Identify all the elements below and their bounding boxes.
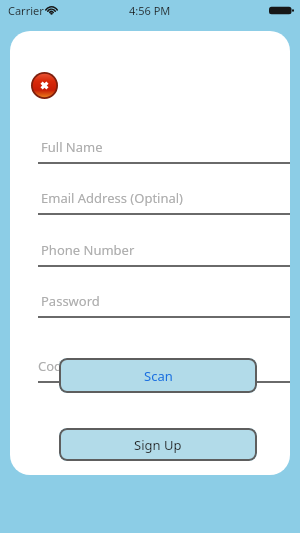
staticText: 4:56 PM [129,3,171,18]
button[interactable]: Full Name [10,138,290,164]
button[interactable]: Password [10,292,290,318]
staticText: Full Name [41,138,103,156]
button[interactable]: Scan [59,358,257,393]
button[interactable]: Email Address (Optinal) [10,189,290,215]
button[interactable]: Phone Number [10,241,290,267]
button[interactable]: Code [10,357,290,383]
staticText: Carrier [8,3,44,18]
staticText: Code [38,357,70,375]
staticText: Phone Number [41,241,135,259]
staticText: Scan [144,367,173,385]
staticText: Email Address (Optinal) [41,189,184,207]
button[interactable]: Close [31,72,58,99]
staticText: Password [41,292,100,310]
button[interactable]: Sign Up [59,428,257,461]
staticText: Sign Up [134,436,182,454]
